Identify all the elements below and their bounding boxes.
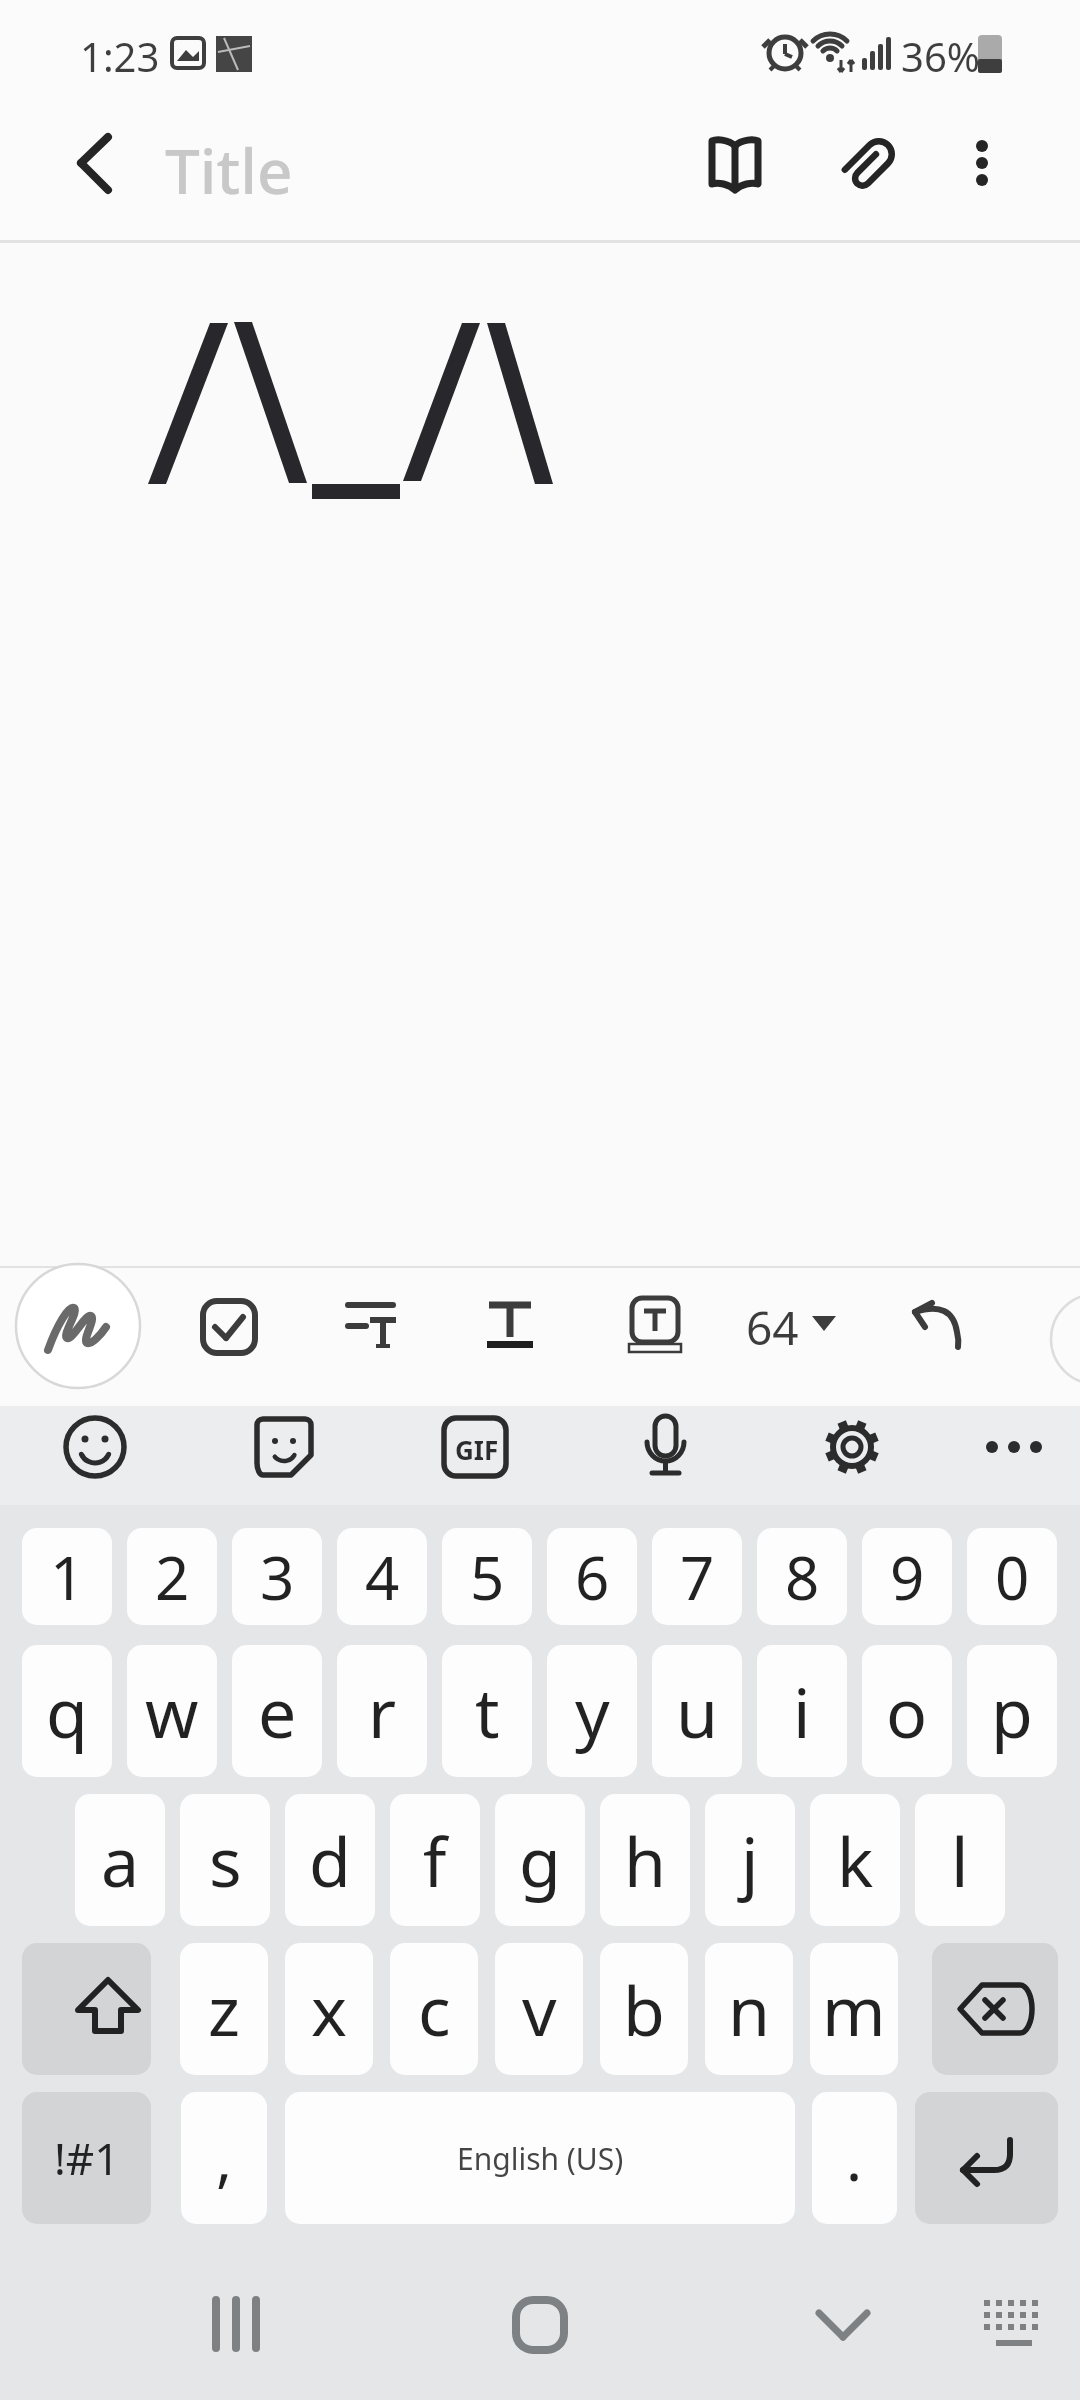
button[interactable]: s: [180, 1794, 270, 1926]
staticText: u: [676, 1665, 719, 1758]
button[interactable]: 3: [232, 1528, 322, 1625]
button[interactable]: f: [390, 1794, 480, 1926]
button[interactable]: [471, 1288, 549, 1366]
button[interactable]: i: [757, 1645, 847, 1777]
staticText: Title: [165, 128, 293, 212]
staticText: z: [208, 1963, 240, 2056]
button[interactable]: z: [180, 1943, 268, 2075]
staticText: y: [575, 1665, 610, 1758]
button[interactable]: [333, 1288, 411, 1366]
button[interactable]: [630, 1412, 700, 1482]
staticText: ,: [216, 2117, 233, 2199]
staticText: f: [423, 1814, 447, 1907]
staticText: 2: [155, 1536, 190, 1618]
button[interactable]: !#1: [22, 2092, 151, 2224]
staticText: t: [475, 1665, 500, 1758]
button[interactable]: [695, 125, 775, 205]
button[interactable]: [60, 1412, 130, 1482]
staticText: 8: [785, 1536, 820, 1618]
button[interactable]: 8: [757, 1528, 847, 1625]
staticText: e: [258, 1665, 297, 1758]
button[interactable]: [21, 1265, 135, 1379]
button[interactable]: w: [127, 1645, 217, 1777]
staticText: m: [822, 1963, 886, 2056]
button[interactable]: v: [495, 1943, 583, 2075]
button[interactable]: [22, 1943, 151, 2075]
staticText: i: [793, 1665, 811, 1758]
staticText: g: [519, 1814, 561, 1907]
staticText: 64: [746, 1296, 799, 1359]
button[interactable]: h: [600, 1794, 690, 1926]
staticText: 3: [260, 1536, 295, 1618]
staticText: English (US): [457, 2138, 624, 2179]
button[interactable]: j: [705, 1794, 795, 1926]
button[interactable]: p: [967, 1645, 1057, 1777]
button[interactable]: [817, 1412, 887, 1482]
button[interactable]: d: [285, 1794, 375, 1926]
staticText: j: [741, 1814, 759, 1907]
button[interactable]: [965, 2270, 1075, 2380]
button[interactable]: n: [705, 1943, 793, 2075]
staticText: v: [522, 1963, 557, 2056]
staticText: .: [846, 2117, 863, 2199]
button[interactable]: [440, 1412, 510, 1482]
button[interactable]: y: [547, 1645, 637, 1777]
button[interactable]: 0: [967, 1528, 1057, 1625]
staticText: b: [623, 1963, 665, 2056]
staticText: 4: [365, 1536, 400, 1618]
staticText: k: [837, 1814, 874, 1907]
button[interactable]: [915, 2092, 1058, 2224]
staticText: n: [728, 1963, 771, 2056]
staticText: 6: [575, 1536, 610, 1618]
button[interactable]: 9: [862, 1528, 952, 1625]
button[interactable]: q: [22, 1645, 112, 1777]
button[interactable]: [485, 2270, 595, 2380]
staticText: h: [624, 1814, 667, 1907]
button[interactable]: [980, 1412, 1056, 1482]
button[interactable]: 2: [127, 1528, 217, 1625]
button[interactable]: 7: [652, 1528, 742, 1625]
button[interactable]: [190, 1288, 268, 1366]
button[interactable]: English (US): [285, 2092, 795, 2224]
button[interactable]: k: [810, 1794, 900, 1926]
staticText: o: [886, 1665, 928, 1758]
button[interactable]: a: [75, 1794, 165, 1926]
staticText: l: [951, 1814, 969, 1907]
button[interactable]: 5: [442, 1528, 532, 1625]
button[interactable]: 4: [337, 1528, 427, 1625]
button[interactable]: [740, 1288, 840, 1366]
button[interactable]: e: [232, 1645, 322, 1777]
button[interactable]: x: [285, 1943, 373, 2075]
button[interactable]: [947, 125, 1017, 205]
button[interactable]: [180, 2270, 290, 2380]
staticText: 9: [890, 1536, 925, 1618]
staticText: 1: [50, 1536, 85, 1618]
button[interactable]: [790, 2270, 900, 2380]
button[interactable]: [250, 1412, 320, 1482]
staticText: !#1: [54, 2128, 120, 2188]
button[interactable]: [616, 1288, 694, 1366]
staticText: 0: [995, 1536, 1030, 1618]
button[interactable]: .: [812, 2092, 897, 2224]
staticText: c: [418, 1963, 451, 2056]
staticText: w: [145, 1665, 199, 1758]
button[interactable]: t: [442, 1645, 532, 1777]
button[interactable]: ,: [181, 2092, 267, 2224]
button[interactable]: 6: [547, 1528, 637, 1625]
button[interactable]: [896, 1288, 974, 1366]
button[interactable]: 1: [22, 1528, 112, 1625]
button[interactable]: [833, 125, 913, 205]
button[interactable]: g: [495, 1794, 585, 1926]
button[interactable]: r: [337, 1645, 427, 1777]
button[interactable]: o: [862, 1645, 952, 1777]
button[interactable]: u: [652, 1645, 742, 1777]
staticText: p: [991, 1665, 1033, 1758]
button[interactable]: [55, 130, 130, 200]
button[interactable]: c: [390, 1943, 478, 2075]
button[interactable]: [932, 1943, 1058, 2075]
button[interactable]: b: [600, 1943, 688, 2075]
button[interactable]: m: [810, 1943, 898, 2075]
staticText: r: [368, 1665, 397, 1758]
staticText: d: [309, 1814, 351, 1907]
button[interactable]: l: [915, 1794, 1005, 1926]
